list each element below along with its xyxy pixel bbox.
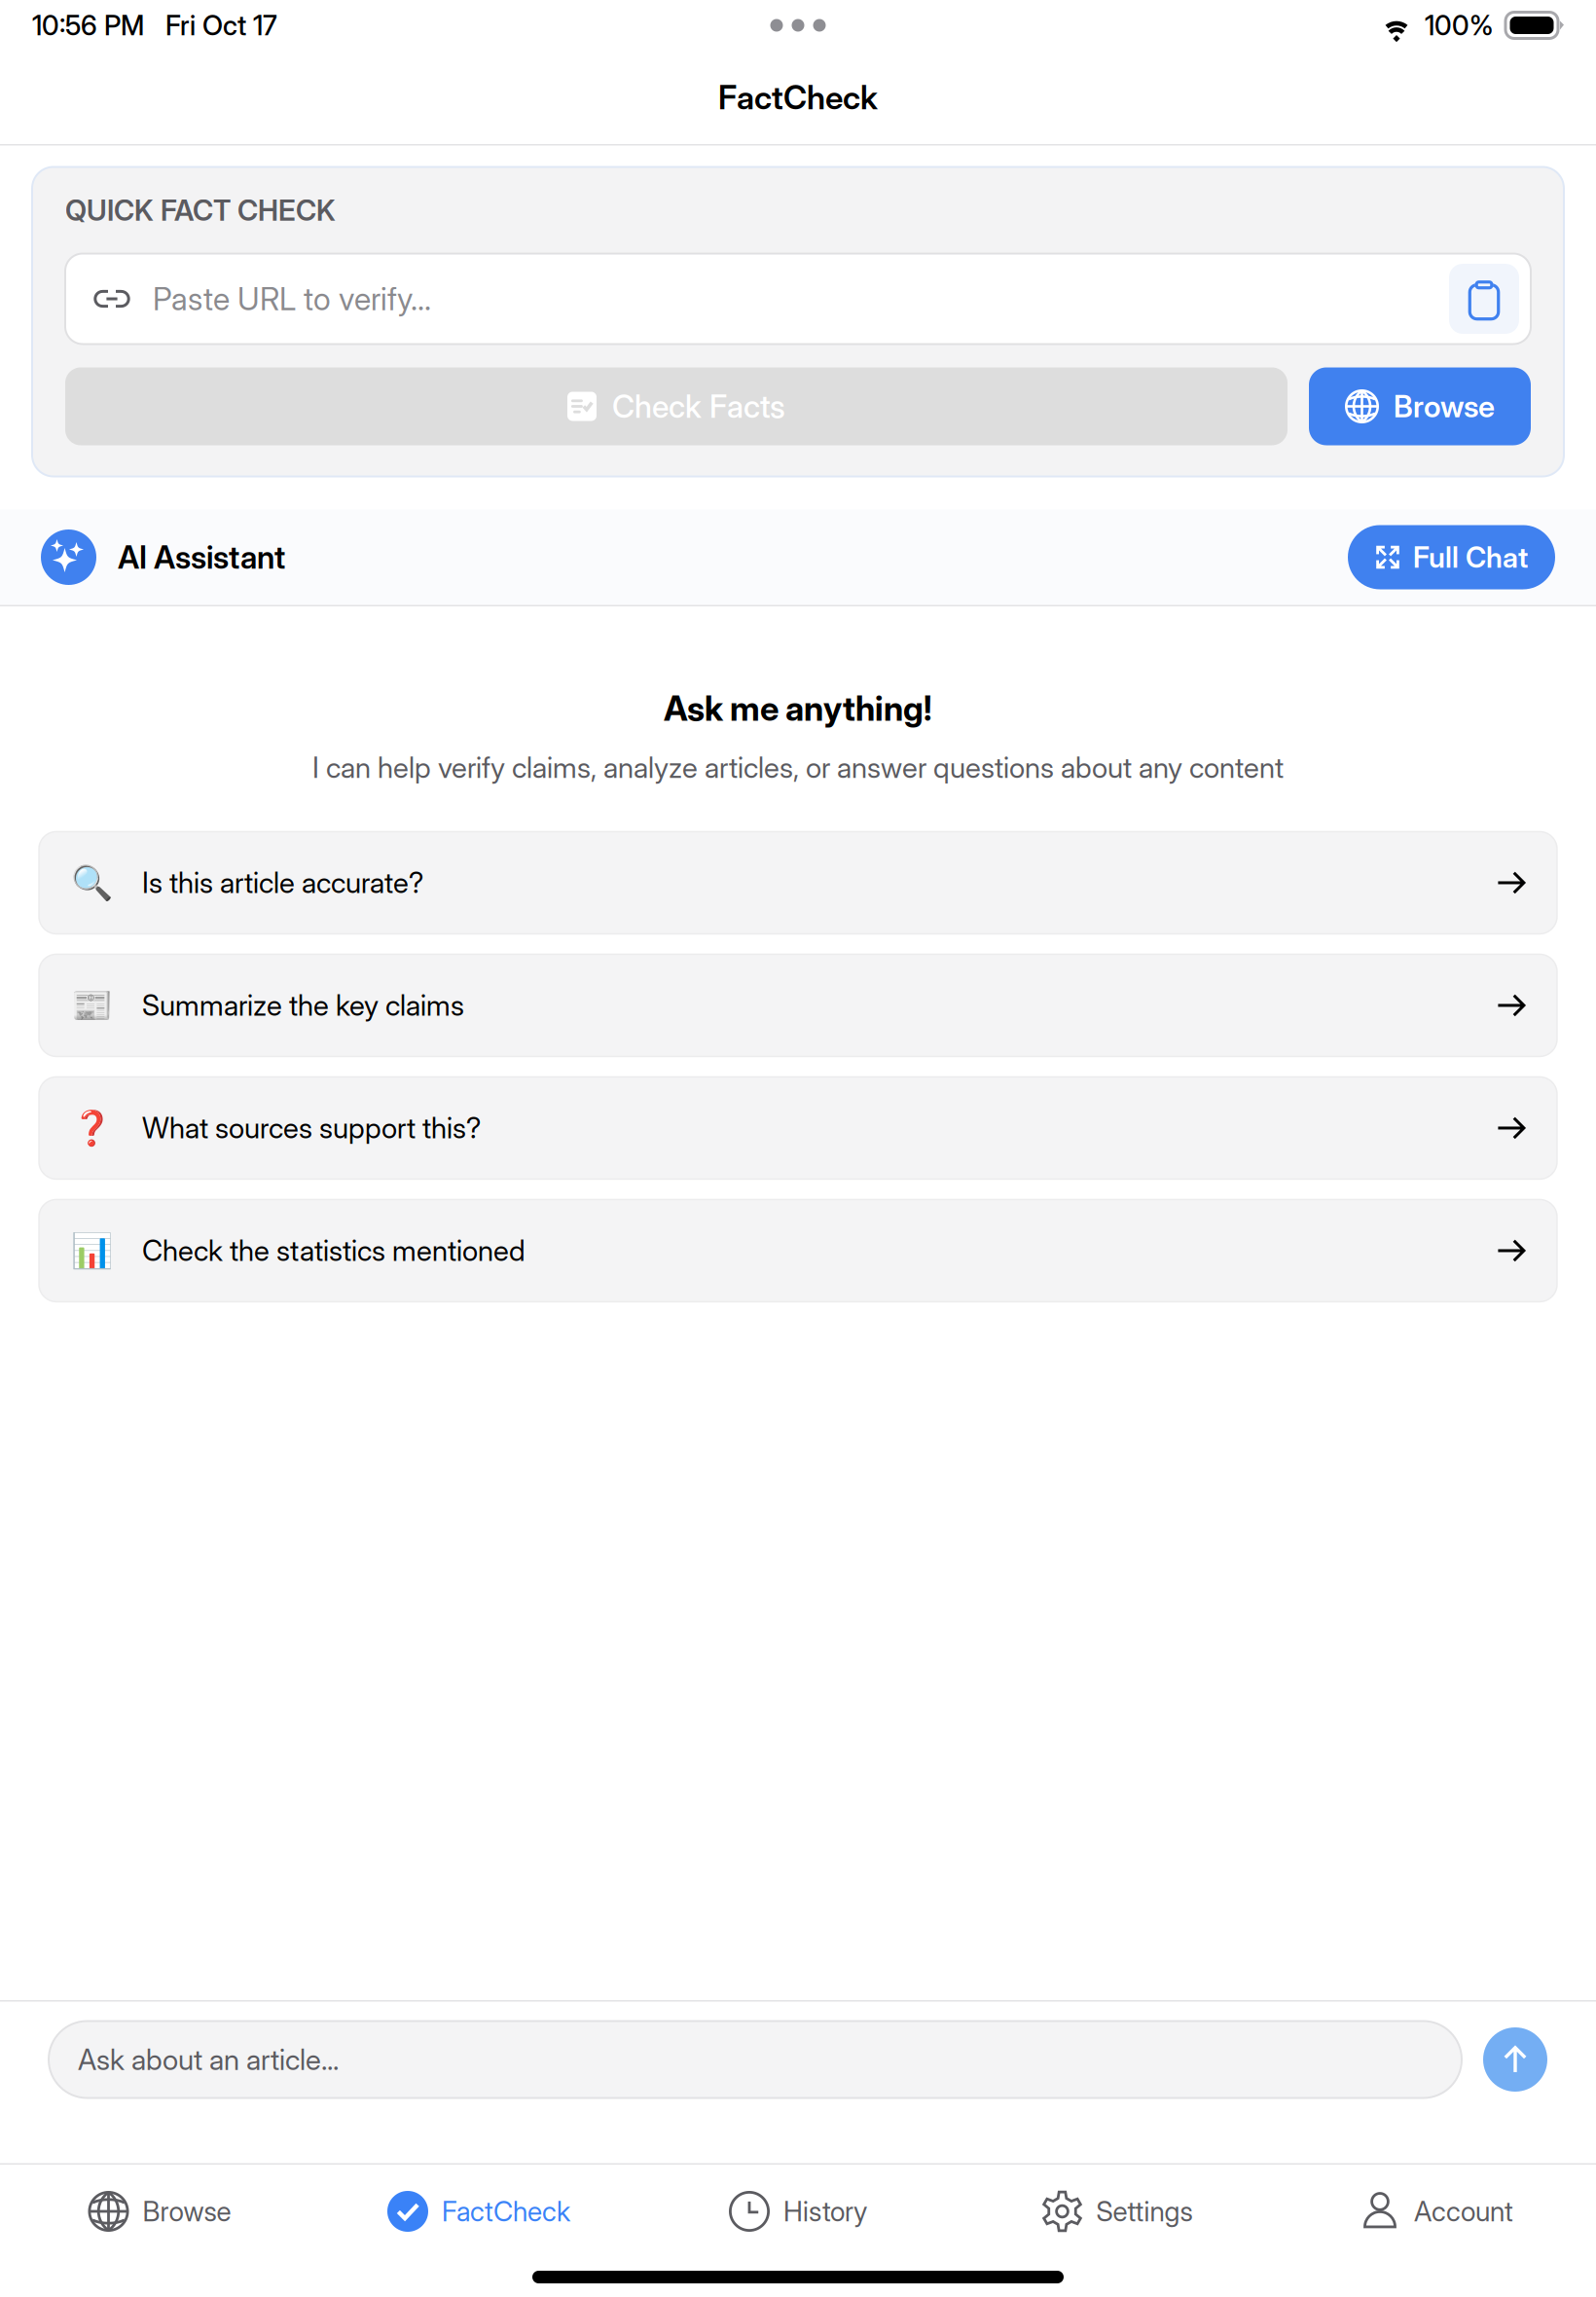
staticText: QUICK FACT CHECK bbox=[65, 193, 336, 228]
staticText: FactCheck bbox=[718, 78, 878, 117]
button[interactable]: Full Chat bbox=[1348, 525, 1555, 589]
staticText: AI Assistant bbox=[118, 538, 285, 576]
button[interactable]: Browse bbox=[1309, 367, 1531, 445]
button[interactable]: FactCheck bbox=[319, 2169, 638, 2253]
button[interactable]: Browse bbox=[0, 2169, 319, 2253]
button[interactable]: Account bbox=[1277, 2169, 1596, 2253]
staticText: History bbox=[783, 2195, 867, 2228]
staticText: Check Facts bbox=[612, 387, 785, 425]
staticText: ❓ bbox=[71, 1108, 112, 1148]
button[interactable]: 📰 bbox=[39, 954, 1557, 1056]
staticText: What sources support this? bbox=[142, 1111, 481, 1145]
staticText: Ask me anything! bbox=[664, 688, 932, 729]
staticText: Fri Oct 17 bbox=[165, 9, 277, 42]
staticText: Summarize the key claims bbox=[142, 988, 464, 1023]
button[interactable]: Settings bbox=[958, 2169, 1277, 2253]
button[interactable]: 🔍 bbox=[39, 832, 1557, 934]
staticText: 📊 bbox=[71, 1231, 112, 1270]
staticText: Settings bbox=[1096, 2195, 1193, 2228]
staticText: 10:56 PM bbox=[32, 9, 144, 42]
button[interactable]: Check Facts bbox=[65, 367, 1288, 445]
staticText: Check the statistics mentioned bbox=[142, 1233, 526, 1268]
staticText: 🔍 bbox=[71, 863, 112, 902]
staticText: Is this article accurate? bbox=[142, 865, 423, 900]
staticText: Full Chat bbox=[1413, 540, 1528, 575]
button[interactable]: History bbox=[638, 2169, 958, 2253]
staticText: Browse bbox=[1394, 388, 1495, 424]
staticText: Browse bbox=[143, 2195, 231, 2228]
staticText: Paste URL to verify... bbox=[153, 280, 431, 318]
button[interactable]: ❓ bbox=[39, 1077, 1557, 1179]
button[interactable]: Paste from clipboard bbox=[1449, 264, 1519, 334]
button[interactable]: Send bbox=[1483, 2027, 1547, 2092]
staticText: 📰 bbox=[71, 986, 112, 1025]
button[interactable]: 📊 bbox=[39, 1200, 1557, 1302]
staticText: I can help verify claims, analyze articl… bbox=[312, 750, 1284, 785]
staticText: Ask about an article... bbox=[78, 2042, 339, 2077]
staticText: 100% bbox=[1425, 9, 1494, 42]
staticText: FactCheck bbox=[442, 2195, 570, 2228]
staticText: Account bbox=[1414, 2195, 1513, 2228]
